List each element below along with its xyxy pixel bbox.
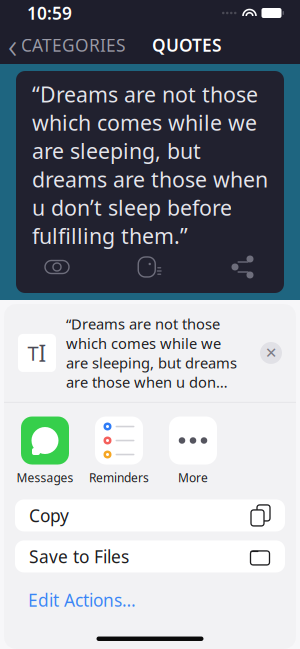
button[interactable]: Speak xyxy=(115,250,185,284)
button[interactable]: Copy xyxy=(15,499,285,531)
staticText: More xyxy=(178,469,208,485)
staticText: T xyxy=(27,340,38,366)
staticText: CATEGORIES xyxy=(21,33,126,56)
staticText: Edit Actions… xyxy=(28,588,136,611)
staticText: 10:59 xyxy=(27,1,72,24)
button[interactable]: Messages xyxy=(8,416,82,485)
button[interactable]: More xyxy=(156,416,230,485)
staticText: QUOTES xyxy=(152,33,222,56)
staticText: ✕ xyxy=(265,345,277,361)
staticText: “Dreams are not those which comes while … xyxy=(66,314,237,392)
button[interactable]: Reminders xyxy=(82,416,156,485)
button[interactable]: ‹ xyxy=(0,16,126,74)
staticText: Messages xyxy=(16,469,73,485)
button[interactable]: Share xyxy=(208,250,278,284)
button[interactable]: View xyxy=(22,250,92,284)
staticText: Copy xyxy=(29,504,69,527)
staticText: I xyxy=(38,338,46,368)
staticText: Save to Files xyxy=(29,545,129,568)
staticText: ‹ xyxy=(8,22,17,68)
button[interactable]: Edit Actions… xyxy=(28,582,136,617)
staticText: “Dreams are not those which comes while … xyxy=(32,80,268,250)
button[interactable]: Close xyxy=(260,342,282,364)
staticText: Reminders xyxy=(89,469,149,485)
button[interactable]: Save to Files xyxy=(15,540,285,572)
